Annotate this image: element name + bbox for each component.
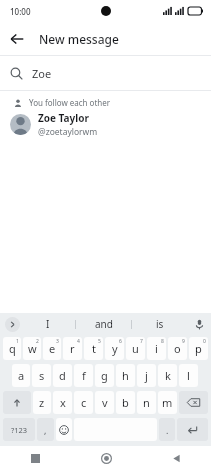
button[interactable]: t [84, 337, 103, 360]
button[interactable]: a [12, 364, 30, 387]
button[interactable]: e [43, 337, 61, 360]
staticText: n [143, 395, 150, 410]
button[interactable]: Back [0, 22, 33, 55]
button[interactable]: Enter [177, 418, 208, 441]
staticText: k [165, 368, 171, 383]
button[interactable]: and [76, 313, 131, 335]
button[interactable]: Recents [0, 446, 71, 470]
staticText: b [122, 395, 129, 410]
button[interactable]: b [116, 391, 135, 414]
button[interactable]: is [132, 313, 187, 335]
button[interactable]: ?123 [3, 418, 35, 441]
staticText: g [101, 368, 108, 383]
staticText: @zoetaylorwm [38, 126, 98, 138]
staticText: is [156, 317, 164, 331]
staticText: and [95, 317, 113, 331]
staticText: 7 [140, 338, 143, 345]
button[interactable]: v [95, 391, 114, 414]
staticText: f [82, 368, 86, 383]
button[interactable]: f [74, 364, 93, 387]
staticText: Zoe [32, 66, 52, 81]
staticText: j [145, 368, 148, 383]
staticText: u [132, 341, 139, 356]
button[interactable]: z [33, 391, 51, 414]
button[interactable]: Back [141, 446, 211, 470]
button[interactable]: m [158, 391, 177, 414]
button[interactable]: Voice input [187, 313, 211, 335]
staticText: q [9, 341, 16, 356]
button[interactable]: Backspace [179, 391, 208, 414]
button[interactable]: I [20, 313, 75, 335]
button[interactable]: r [63, 337, 82, 360]
button[interactable]: Home [71, 446, 141, 470]
staticText: v [102, 395, 108, 410]
button[interactable]: k [158, 364, 177, 387]
button[interactable]: , [37, 418, 54, 441]
staticText: x [60, 395, 66, 410]
button[interactable]: w [23, 337, 41, 360]
staticText: 2 [36, 338, 39, 345]
button[interactable]: g [95, 364, 114, 387]
staticText: l [187, 368, 190, 383]
staticText: h [122, 368, 129, 383]
staticText: m [162, 395, 173, 410]
staticText: 3 [56, 338, 59, 345]
staticText: 5 [98, 338, 101, 345]
button[interactable]: o [168, 337, 187, 360]
button[interactable]: p [189, 337, 208, 360]
staticText: Zoe Taylor [38, 111, 89, 125]
button[interactable]: q [3, 337, 21, 360]
button[interactable]: You follow each other [0, 91, 211, 146]
staticText: New message [39, 31, 119, 47]
staticText: You follow each other [29, 97, 111, 108]
staticText: s [39, 368, 45, 383]
button[interactable]: More suggestions [5, 317, 20, 332]
staticText: r [70, 341, 75, 356]
staticText: c [81, 395, 87, 410]
button[interactable]: i [147, 337, 166, 360]
button[interactable]: d [53, 364, 72, 387]
staticText: 0 [203, 338, 206, 345]
button[interactable]: c [74, 391, 93, 414]
staticText: 6 [119, 338, 122, 345]
staticText: 10:00 [10, 6, 31, 17]
button[interactable]: . [159, 418, 175, 441]
staticText: z [39, 395, 45, 410]
staticText: 1 [16, 338, 19, 345]
button[interactable]: l [179, 364, 198, 387]
staticText: t [92, 341, 96, 356]
button[interactable]: x [53, 391, 72, 414]
staticText: ?123 [11, 425, 28, 435]
staticText: w [28, 341, 37, 356]
staticText: y [112, 341, 118, 356]
staticText: I [46, 317, 50, 331]
staticText: . [166, 424, 169, 436]
staticText: d [59, 368, 66, 383]
button[interactable]: Zoe [0, 56, 211, 90]
staticText: e [49, 341, 56, 356]
button[interactable]: n [137, 391, 156, 414]
button[interactable]: Emoji [56, 418, 72, 441]
button[interactable]: y [105, 337, 124, 360]
staticText: i [155, 341, 158, 356]
staticText: a [18, 368, 25, 383]
staticText: 9 [182, 338, 185, 345]
button[interactable]: s [32, 364, 51, 387]
staticText: , [44, 424, 47, 436]
button[interactable]: Shift [3, 391, 31, 414]
staticText: o [174, 341, 181, 356]
button[interactable]: u [126, 337, 145, 360]
button[interactable]: h [116, 364, 135, 387]
staticText: p [195, 341, 202, 356]
staticText: 8 [161, 338, 164, 345]
staticText: 4 [77, 338, 80, 345]
button[interactable]: j [137, 364, 156, 387]
